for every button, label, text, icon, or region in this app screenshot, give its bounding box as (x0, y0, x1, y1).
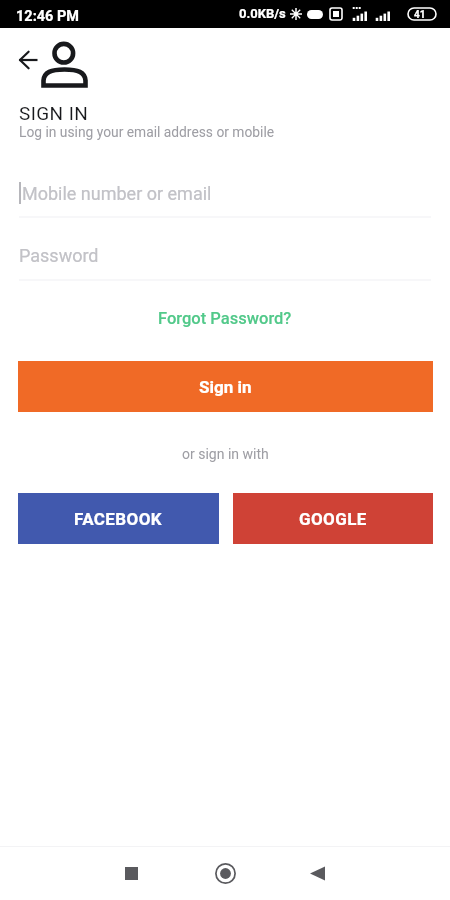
staticText: Password (19, 245, 99, 266)
button[interactable]: Back (295, 851, 339, 895)
button[interactable]: Mobile number or email (19, 174, 431, 212)
staticText: SIGN IN (19, 102, 89, 124)
staticText: GOOGLE (299, 509, 367, 529)
staticText: Mobile number or email (22, 183, 212, 204)
staticText: Log in using your email address or mobil… (19, 124, 275, 140)
staticText: 0.0KB/s (239, 6, 286, 21)
staticText: Forgot Password? (158, 309, 292, 328)
button[interactable]: Home (203, 851, 247, 895)
staticText: Sign in (199, 377, 252, 397)
staticText: FACEBOOK (74, 509, 163, 529)
button[interactable]: Back (6, 44, 38, 76)
button[interactable]: Password (19, 236, 431, 274)
staticText: 41 (414, 9, 426, 21)
button[interactable]: FACEBOOK (18, 493, 219, 544)
button[interactable]: GOOGLE (233, 493, 433, 544)
staticText: or sign in with (182, 446, 269, 462)
button[interactable]: Recent apps (109, 851, 153, 895)
button[interactable]: Forgot Password? (150, 304, 300, 333)
button[interactable]: Sign in (18, 361, 433, 412)
staticText: 12:46 PM (16, 8, 80, 25)
